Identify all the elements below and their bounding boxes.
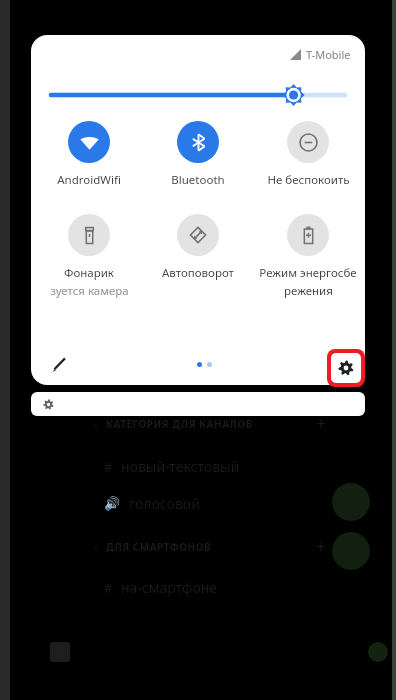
staticText: зуется камера [50,283,129,299]
button[interactable]: # [104,457,396,476]
staticText: Режим энергосбе [259,265,357,281]
staticText: AndroidWifi [57,172,121,188]
staticText: режения [284,283,333,299]
staticText: Не беспокоить [267,172,350,188]
staticText: # [104,458,113,476]
staticText: голосовой [129,494,200,513]
button[interactable]: 🔊 [104,494,396,513]
button[interactable]: # [104,578,396,597]
staticText: Bluetooth [171,172,225,188]
staticText: 🔊 [104,496,121,511]
button[interactable]: Фонарик [37,214,141,299]
button[interactable]: Home [50,642,70,662]
button[interactable]: Режим энергосбе [256,214,360,299]
button[interactable]: Profile [368,642,388,662]
staticText: Фонарик [64,265,114,281]
staticText: новый-текстовый [121,457,240,476]
button[interactable]: Автоповорот [146,214,250,281]
staticText: на-смартфоне [121,578,218,597]
staticText: ⌄ [92,542,100,552]
staticText: ⌄ [92,419,100,429]
staticText: T-Mobile [306,47,351,62]
staticText: ДЛЯ СМАРТФОНОВ [106,540,212,554]
button[interactable]: AndroidWifi [37,121,141,188]
button[interactable]: Bluetooth [146,121,250,188]
staticText: КАТЕГОРИЯ ДЛЯ КАНАЛОВ [106,417,253,431]
button[interactable]: Не беспокоить [256,121,360,188]
button[interactable]: Edit tiles [39,344,79,384]
staticText: + [316,412,326,435]
staticText: Автоповорот [162,265,234,281]
button[interactable]: Settings [319,347,353,381]
button[interactable]: Brightness [31,73,365,117]
staticText: # [104,579,113,597]
staticText: + [316,535,326,558]
